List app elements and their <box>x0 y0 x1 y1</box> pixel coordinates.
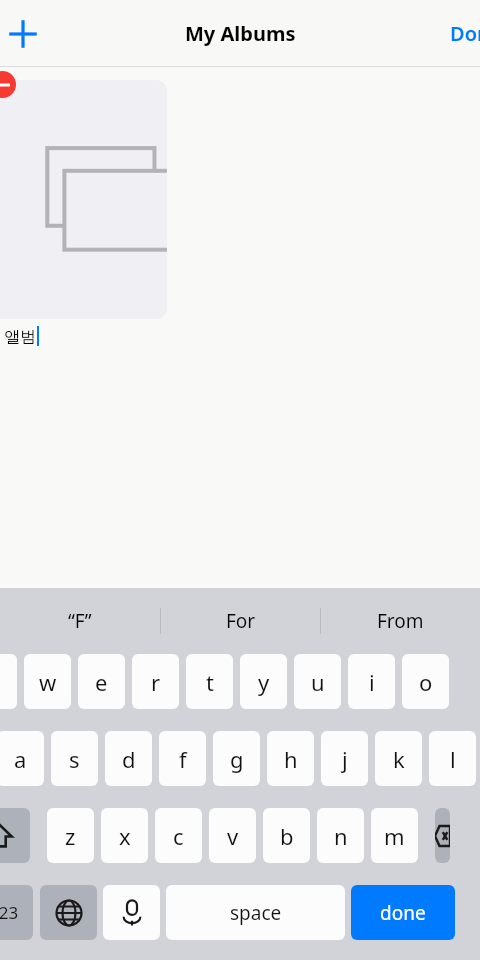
button[interactable]: l <box>429 731 476 786</box>
staticText: Done <box>450 20 480 47</box>
staticText: 새 앨범 <box>0 325 37 347</box>
button[interactable]: Album thumbnail <box>0 80 167 319</box>
staticText: 123 <box>0 901 19 924</box>
staticText: u <box>311 667 325 697</box>
staticText: h <box>284 744 298 774</box>
staticText: v <box>227 821 239 851</box>
button[interactable]: done <box>351 885 455 940</box>
button[interactable]: space <box>166 885 345 940</box>
button[interactable]: u <box>294 654 341 709</box>
button[interactable]: Done <box>450 20 480 47</box>
staticText: n <box>334 821 348 851</box>
button[interactable]: h <box>267 731 314 786</box>
button[interactable]: t <box>186 654 233 709</box>
staticText: a <box>14 744 27 774</box>
staticText: From <box>377 608 424 634</box>
button[interactable]: v <box>209 808 256 863</box>
staticText: c <box>173 821 184 851</box>
button[interactable]: Delete album <box>0 71 16 98</box>
button[interactable]: r <box>132 654 179 709</box>
staticText: e <box>95 667 108 697</box>
button[interactable]: s <box>51 731 98 786</box>
staticText: My Albums <box>185 20 296 47</box>
staticText: z <box>65 821 76 851</box>
button[interactable]: f <box>159 731 206 786</box>
staticText: For <box>226 608 256 634</box>
button[interactable]: Add album <box>0 11 46 57</box>
button[interactable]: y <box>240 654 287 709</box>
button[interactable]: Shift <box>0 808 30 863</box>
button[interactable]: g <box>213 731 260 786</box>
button[interactable]: j <box>321 731 368 786</box>
button[interactable]: b <box>263 808 310 863</box>
staticText: t <box>206 667 214 697</box>
staticText: f <box>179 744 187 774</box>
button[interactable]: d <box>105 731 152 786</box>
staticText: b <box>280 821 294 851</box>
staticText: j <box>342 744 348 774</box>
button[interactable]: z <box>47 808 94 863</box>
button[interactable]: w <box>24 654 71 709</box>
staticText: x <box>119 821 131 851</box>
button[interactable]: a <box>0 731 44 786</box>
staticText: i <box>369 667 375 697</box>
button[interactable]: 123 <box>0 885 33 940</box>
button[interactable]: q <box>0 654 17 709</box>
button[interactable]: o <box>402 654 449 709</box>
button[interactable]: n <box>317 808 364 863</box>
staticText: y <box>258 667 270 697</box>
button[interactable]: i <box>348 654 395 709</box>
button[interactable]: c <box>155 808 202 863</box>
staticText: w <box>39 667 57 697</box>
button[interactable]: e <box>78 654 125 709</box>
staticText: done <box>380 900 426 926</box>
button[interactable]: For <box>161 588 320 654</box>
staticText: space <box>230 900 282 926</box>
button[interactable]: Dictation <box>103 885 160 940</box>
staticText: g <box>230 744 244 774</box>
button[interactable]: Backspace <box>435 808 450 863</box>
staticText: r <box>151 667 161 697</box>
button[interactable]: x <box>101 808 148 863</box>
staticText: m <box>384 821 405 851</box>
staticText: d <box>122 744 136 774</box>
button[interactable]: From <box>321 588 480 654</box>
button[interactable]: k <box>375 731 422 786</box>
staticText: “F” <box>68 608 92 634</box>
staticText: s <box>69 744 80 774</box>
button[interactable]: m <box>371 808 418 863</box>
staticText: k <box>393 744 405 774</box>
staticText: l <box>450 744 456 774</box>
button[interactable]: Change keyboard <box>40 885 97 940</box>
button[interactable]: “F” <box>0 588 160 654</box>
staticText: o <box>419 667 433 697</box>
